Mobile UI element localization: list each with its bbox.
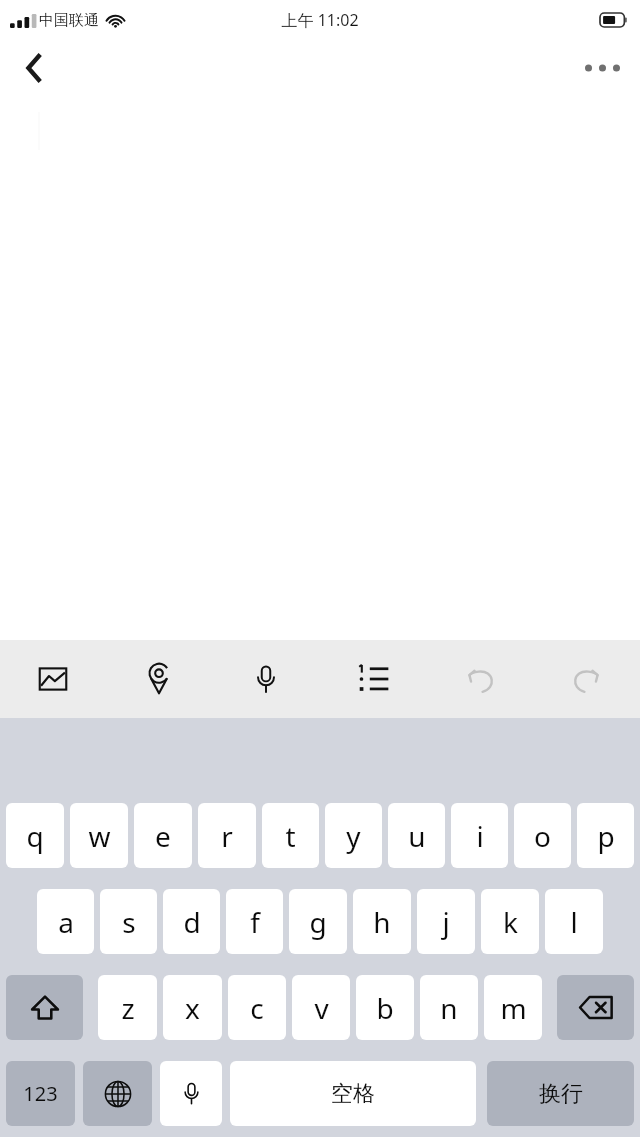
staticText: h	[373, 903, 391, 941]
button[interactable]: j	[417, 889, 475, 954]
button[interactable]: k	[481, 889, 539, 954]
button[interactable]: p	[577, 803, 634, 868]
staticText: m	[500, 989, 527, 1027]
button[interactable]: s	[100, 889, 157, 954]
staticText: s	[122, 903, 136, 941]
staticText: c	[250, 989, 264, 1027]
staticText: j	[442, 903, 450, 941]
button[interactable]: g	[289, 889, 347, 954]
staticText: u	[408, 817, 426, 855]
staticText: l	[570, 903, 578, 941]
staticText: 换行	[539, 1080, 583, 1108]
staticText: k	[503, 903, 518, 941]
button[interactable]: r	[198, 803, 256, 868]
staticText: 123	[23, 1080, 58, 1107]
button[interactable]: m	[484, 975, 542, 1040]
button[interactable]: o	[514, 803, 571, 868]
button[interactable]: t	[262, 803, 319, 868]
button[interactable]: v	[292, 975, 350, 1040]
staticText: f	[250, 903, 260, 941]
button[interactable]: x	[163, 975, 222, 1040]
button[interactable]: c	[228, 975, 286, 1040]
staticText: b	[376, 989, 394, 1027]
button[interactable]: a	[37, 889, 94, 954]
button[interactable]: h	[353, 889, 411, 954]
button[interactable]: 换行	[487, 1061, 634, 1126]
button[interactable]: q	[6, 803, 64, 868]
button[interactable]: e	[134, 803, 192, 868]
button[interactable]: n	[420, 975, 478, 1040]
staticText: i	[476, 817, 484, 855]
button[interactable]: Insert image	[0, 640, 106, 718]
staticText: q	[26, 817, 44, 855]
button[interactable]: More options	[572, 44, 632, 92]
button[interactable]: Shift	[6, 975, 83, 1040]
button[interactable]: 123	[6, 1061, 75, 1126]
staticText: a	[58, 903, 74, 941]
staticText: p	[597, 817, 615, 855]
button[interactable]: d	[163, 889, 220, 954]
button[interactable]: 空格	[230, 1061, 476, 1126]
staticText: n	[440, 989, 458, 1027]
staticText: g	[309, 903, 327, 941]
button[interactable]: Backspace	[557, 975, 634, 1040]
staticText: d	[183, 903, 201, 941]
button[interactable]: Back	[6, 40, 62, 96]
button[interactable]: i	[451, 803, 508, 868]
button[interactable]: w	[70, 803, 128, 868]
staticText: y	[346, 817, 361, 855]
staticText: z	[121, 989, 135, 1027]
button[interactable]: u	[388, 803, 445, 868]
button[interactable]: z	[98, 975, 157, 1040]
staticText: 中国联通	[39, 11, 99, 30]
button[interactable]: Redo	[533, 640, 640, 718]
staticText: x	[185, 989, 200, 1027]
staticText: t	[285, 817, 296, 855]
staticText: 上午 11:02	[281, 9, 359, 31]
staticText: r	[221, 817, 233, 855]
button[interactable]: b	[356, 975, 414, 1040]
button[interactable]: Switch keyboard	[83, 1061, 152, 1126]
button[interactable]: List	[319, 640, 426, 718]
staticText: v	[314, 989, 329, 1027]
button[interactable]: f	[226, 889, 283, 954]
button[interactable]: l	[545, 889, 603, 954]
button[interactable]: Dictation	[160, 1061, 222, 1126]
staticText: o	[534, 817, 551, 855]
button[interactable]: Location	[106, 640, 212, 718]
staticText: 空格	[331, 1080, 375, 1108]
staticText: w	[88, 817, 111, 855]
button[interactable]: Undo	[426, 640, 533, 718]
staticText: e	[155, 817, 171, 855]
button[interactable]: y	[325, 803, 382, 868]
button[interactable]: Voice input	[212, 640, 319, 718]
